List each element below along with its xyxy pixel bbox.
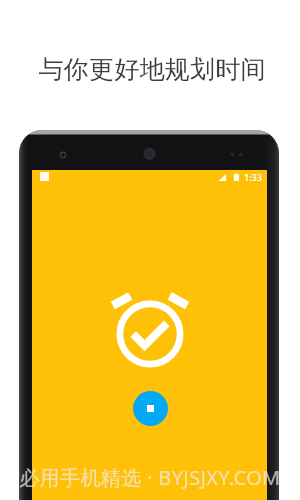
staticText: 必用手机精选 · BYJSJXY.COM [0, 464, 300, 491]
staticText: 1:33 [244, 171, 262, 183]
staticText: 与你更好地规划时间 [2, 54, 300, 85]
button[interactable]: Stop timer [133, 391, 168, 426]
